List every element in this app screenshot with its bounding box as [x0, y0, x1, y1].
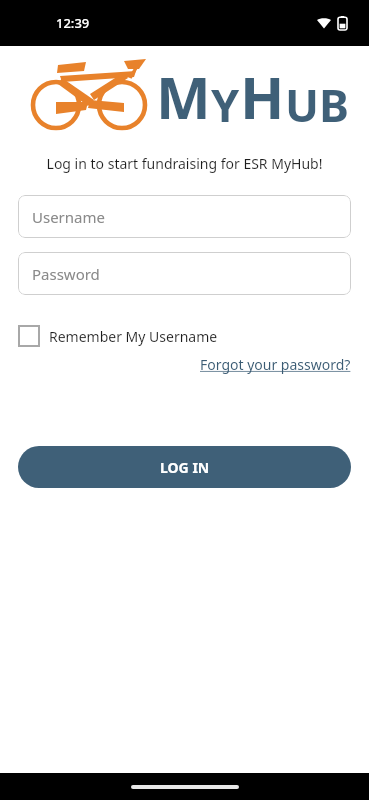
staticText: Log in to start fundraising for ESR MyHu… [0, 154, 369, 173]
staticText: LOG IN [160, 458, 210, 477]
staticText: H [240, 57, 285, 136]
button[interactable]: Username [18, 195, 351, 238]
staticText: Remember My Username [49, 327, 218, 346]
button[interactable]: Password [18, 252, 351, 295]
staticText: M [156, 57, 211, 136]
button[interactable]: LOG IN [18, 446, 351, 488]
staticText: Password [32, 264, 100, 284]
button[interactable]: Remember My Username [18, 325, 218, 347]
staticText: UB [285, 74, 349, 135]
staticText: Y [211, 74, 240, 135]
button[interactable]: Forgot your password? [200, 355, 351, 374]
staticText: Username [32, 207, 105, 227]
staticText: 12:39 [56, 14, 90, 32]
